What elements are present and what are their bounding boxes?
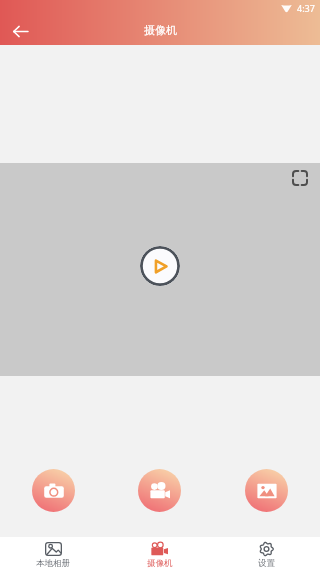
button[interactable]: Fullscreen <box>288 166 312 190</box>
staticText: 本地相册 <box>36 558 70 569</box>
staticText: 摄像机 <box>144 23 177 37</box>
button[interactable]: Play <box>140 246 180 286</box>
button[interactable]: Gallery <box>245 469 288 512</box>
button[interactable]: 摄像机 <box>106 537 213 569</box>
button[interactable]: Record video <box>138 469 181 512</box>
staticText: 摄像机 <box>147 558 173 569</box>
staticText: 设置 <box>258 558 275 569</box>
button[interactable]: 设置 <box>213 537 320 569</box>
button[interactable]: Take photo <box>32 469 75 512</box>
staticText: 4:37 <box>297 2 315 14</box>
button[interactable]: Back <box>0 17 40 45</box>
button[interactable]: 本地相册 <box>0 537 106 569</box>
